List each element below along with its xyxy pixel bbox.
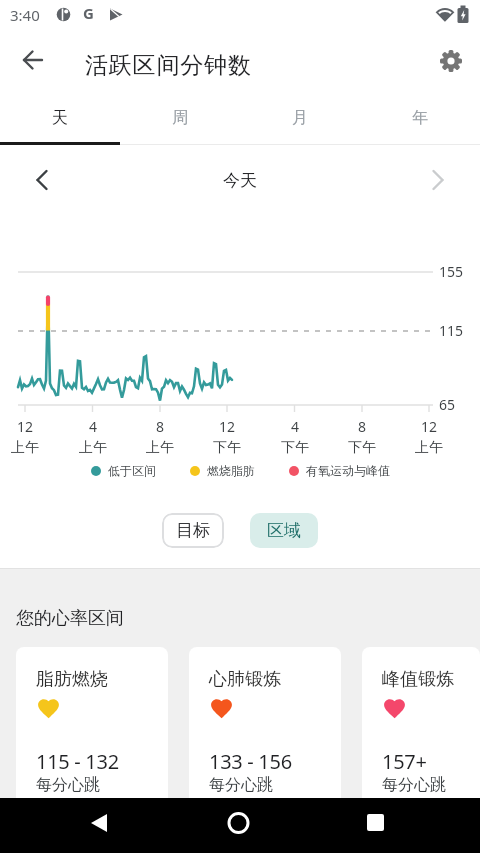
staticText: 年 [412,108,428,128]
button[interactable]: 脂肪燃烧 [16,647,168,812]
button[interactable] [20,158,64,202]
staticText: 4 [270,417,320,436]
staticText: 有氧运动与峰值 [306,463,390,478]
staticText: 3:40 [10,5,40,25]
staticText: 115 [439,321,464,340]
staticText: 每分心跳 [36,775,100,795]
button[interactable]: 目标 [162,513,224,548]
button[interactable] [354,803,398,847]
staticText: 上午 [404,439,454,457]
staticText: 12 [202,417,252,436]
staticText: 您的心率区间 [16,607,124,630]
staticText: 157+ [382,748,427,775]
staticText: G [83,3,94,23]
button[interactable]: 周 [120,90,240,145]
staticText: 天 [52,108,68,128]
staticText: 燃烧脂肪 [207,463,255,478]
staticText: 脂肪燃烧 [36,668,108,691]
staticText: 8 [135,417,185,436]
staticText: 区域 [267,520,301,541]
button[interactable]: 年 [360,90,480,145]
button[interactable]: 峰值锻炼 [362,647,480,812]
staticText: 目标 [176,520,210,541]
staticText: 下午 [202,439,252,457]
staticText: 峰值锻炼 [382,668,454,691]
button[interactable] [416,158,460,202]
staticText: 133 - 156 [209,748,292,775]
button[interactable]: 心肺锻炼 [189,647,341,812]
button[interactable]: 区域 [250,513,318,548]
staticText: 65 [439,395,456,414]
staticText: 月 [292,108,308,128]
button[interactable] [12,39,56,83]
staticText: 12 [404,417,454,436]
staticText: 155 [439,262,464,281]
staticText: 12 [0,417,50,436]
button[interactable]: 天 [0,90,120,145]
staticText: 今天 [223,170,257,191]
staticText: 下午 [337,439,387,457]
staticText: 每分心跳 [209,775,273,795]
button[interactable] [429,39,473,83]
staticText: 上午 [68,439,118,457]
staticText: 115 - 132 [36,748,119,775]
staticText: 上午 [0,439,50,457]
staticText: 8 [337,417,387,436]
staticText: 低于区间 [108,463,156,478]
button[interactable]: 月 [240,90,360,145]
staticText: 周 [172,108,188,128]
staticText: 4 [68,417,118,436]
staticText: 下午 [270,439,320,457]
staticText: 每分心跳 [382,775,446,795]
staticText: 心肺锻炼 [209,668,281,691]
staticText: 活跃区间分钟数 [85,51,252,80]
staticText: 上午 [135,439,185,457]
button[interactable] [76,803,120,847]
button[interactable] [217,803,261,847]
